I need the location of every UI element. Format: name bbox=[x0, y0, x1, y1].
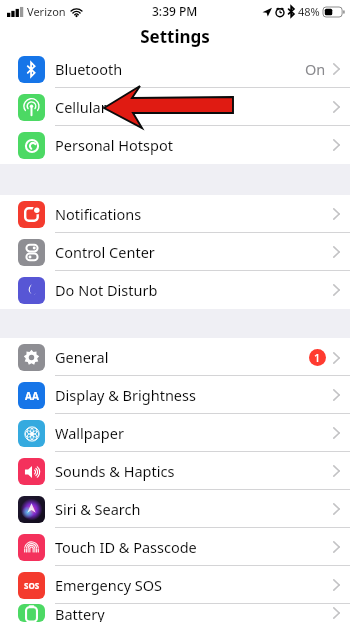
button[interactable]: Siri & Search bbox=[0, 490, 350, 528]
staticText: Personal Hotspot bbox=[55, 135, 173, 155]
staticText: Control Center bbox=[55, 242, 155, 262]
button[interactable]: Personal Hotspot bbox=[0, 126, 350, 164]
button[interactable]: Cellular bbox=[0, 88, 350, 126]
staticText: Battery bbox=[55, 604, 105, 622]
staticText: AA bbox=[25, 389, 39, 403]
button[interactable]: Battery bbox=[0, 604, 350, 622]
button[interactable]: Notifications bbox=[0, 195, 350, 233]
button[interactable]: SOS bbox=[0, 566, 350, 604]
staticText: Bluetooth bbox=[55, 59, 123, 79]
staticText: Notifications bbox=[55, 204, 142, 224]
button[interactable]: Control Center bbox=[0, 233, 350, 271]
staticText: 3:39 PM bbox=[152, 3, 198, 19]
staticText: General bbox=[55, 347, 109, 367]
button[interactable]: AA bbox=[0, 376, 350, 414]
button[interactable]: Sounds & Haptics bbox=[0, 452, 350, 490]
button[interactable]: Touch ID & Passcode bbox=[0, 528, 350, 566]
staticText: On bbox=[305, 59, 326, 79]
staticText: Cellular bbox=[55, 97, 107, 117]
button[interactable]: Do Not Disturb bbox=[0, 271, 350, 309]
button[interactable]: General bbox=[0, 338, 350, 376]
staticText: Wallpaper bbox=[55, 423, 124, 443]
button[interactable]: Bluetooth bbox=[0, 50, 350, 88]
button[interactable]: Wallpaper bbox=[0, 414, 350, 452]
staticText: 1 bbox=[314, 350, 321, 365]
staticText: Verizon bbox=[27, 4, 66, 19]
staticText: 48% bbox=[298, 4, 320, 19]
staticText: Do Not Disturb bbox=[55, 280, 158, 300]
staticText: Settings bbox=[140, 25, 210, 48]
staticText: Emergency SOS bbox=[55, 575, 163, 595]
staticText: Sounds & Haptics bbox=[55, 461, 175, 481]
staticText: SOS bbox=[24, 580, 40, 591]
staticText: Display & Brightness bbox=[55, 385, 196, 405]
staticText: Siri & Search bbox=[55, 499, 141, 519]
staticText: Touch ID & Passcode bbox=[55, 537, 197, 557]
